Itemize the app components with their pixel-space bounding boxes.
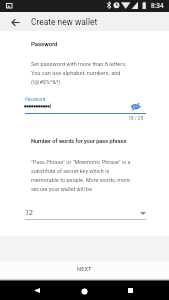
button[interactable]: 12 [25, 207, 146, 221]
button[interactable]: Back [6, 13, 24, 31]
staticText: Set password with more than 8 letters. Y… [31, 61, 127, 85]
staticText: Number of words for your pass phrase [31, 138, 127, 145]
button[interactable]: Toggle password visibility [130, 101, 141, 112]
button[interactable]: NEXT [0, 261, 169, 279]
staticText: Password [25, 97, 46, 102]
staticText: Create new wallet [31, 17, 98, 27]
button[interactable]: Recents [122, 282, 139, 299]
staticText: Password [31, 40, 58, 47]
staticText: NEXT [77, 266, 92, 273]
staticText: "Pass Phrase" or "Mnemonic Phrase" is a … [31, 159, 131, 192]
staticText: 8:34 [151, 2, 164, 10]
staticText: 12 [25, 209, 33, 217]
button[interactable]: Home [75, 282, 93, 300]
staticText: 18 / 25 [25, 116, 143, 121]
button[interactable]: Back [28, 282, 45, 299]
